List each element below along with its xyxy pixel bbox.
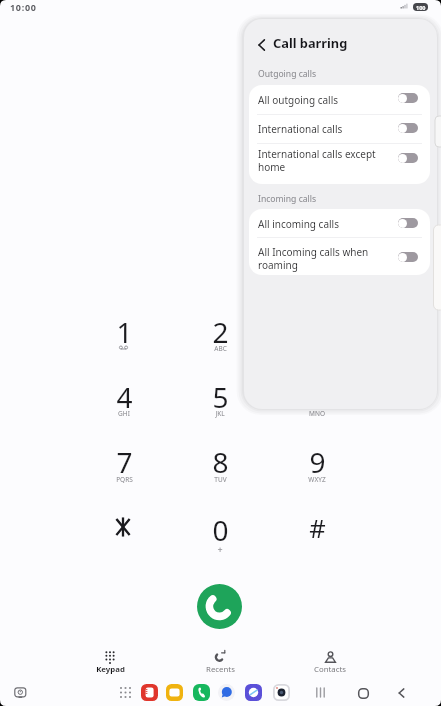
button[interactable] [141,684,158,701]
staticText: WXYZ [308,475,326,484]
button[interactable] [245,684,262,701]
staticText: PQRS [116,475,133,484]
button[interactable] [182,646,258,676]
button[interactable] [197,584,242,629]
button[interactable] [218,684,235,701]
staticText: 100 [416,4,426,11]
button[interactable] [119,686,132,699]
button[interactable]: 0 [186,511,254,549]
staticText: + [217,543,223,553]
staticText: 4 [116,378,133,416]
staticText: 8 [212,443,229,481]
staticText: Outgoing calls [258,68,317,79]
staticText: 6 [309,378,326,416]
staticText: All Incoming calls when roaming [258,245,369,272]
staticText: ABC [214,344,227,353]
button[interactable] [398,252,418,262]
button[interactable] [249,114,430,143]
staticText: 0 [212,511,229,549]
staticText: Keypad [96,664,125,675]
button[interactable] [397,688,406,698]
staticText: 9 [309,443,326,481]
button[interactable] [398,218,418,228]
button[interactable]: 4 [90,378,158,416]
button[interactable] [398,153,418,163]
staticText: TUV [214,475,227,484]
button[interactable]: 5 [186,378,254,416]
staticText: International calls except home [258,147,376,174]
staticText: JKL [215,409,225,418]
staticText: International calls [258,122,343,136]
button[interactable] [193,684,210,701]
staticText: Call barring [273,34,348,51]
button[interactable] [313,687,328,698]
button[interactable] [249,209,430,238]
button[interactable] [249,85,430,114]
button[interactable] [249,238,430,275]
button[interactable] [106,510,140,544]
button[interactable]: 7 [90,443,158,481]
button[interactable] [249,143,430,184]
staticText: 7 [116,443,133,481]
staticText: Recents [206,664,235,675]
button[interactable]: # [283,510,351,546]
staticText: 2 [212,313,229,351]
staticText: # [309,511,326,546]
staticText: Incoming calls [258,193,317,204]
button[interactable] [166,684,183,701]
button[interactable]: 6 [283,378,351,416]
button[interactable] [398,123,418,133]
button[interactable] [358,688,369,699]
button[interactable] [72,646,148,676]
button[interactable] [273,684,290,701]
button[interactable]: 9 [283,443,351,481]
staticText: 10:00 [10,1,37,11]
button[interactable]: 8 [186,443,254,481]
staticText: MNO [309,409,325,418]
button[interactable]: 1 [90,313,158,351]
button[interactable] [248,31,274,59]
button[interactable] [14,687,27,699]
staticText: Contacts [314,664,346,675]
staticText: All outgoing calls [258,93,339,107]
staticText: GHI [118,409,130,418]
button[interactable] [292,646,368,676]
button[interactable] [398,93,418,103]
button[interactable]: 2 [186,313,254,351]
staticText: 1 [116,313,133,351]
staticText: 5 [212,378,229,416]
staticText: All incoming calls [258,217,339,231]
